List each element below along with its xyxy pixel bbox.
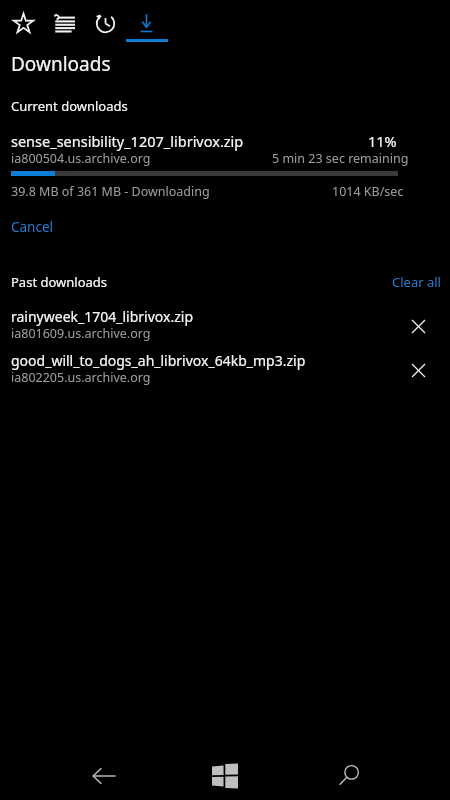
staticText: 1014 KB/sec (332, 183, 404, 200)
button[interactable]: good_will_to_dogs_ah_librivox_64kb_mp3.z… (0, 350, 450, 390)
staticText: ia802205.us.archive.org (11, 369, 151, 386)
staticText: ia800504.us.archive.org (11, 150, 151, 167)
button[interactable]: Remove download (400, 352, 436, 388)
button[interactable]: Downloads (125, 2, 167, 44)
staticText: Cancel (11, 218, 54, 236)
button[interactable]: Back (82, 754, 126, 798)
staticText: 39.8 MB of 361 MB - Downloading (11, 183, 210, 200)
staticText: Current downloads (11, 97, 128, 115)
staticText: sense_sensibility_1207_librivox.zip (11, 131, 244, 151)
button[interactable]: Start (203, 754, 247, 798)
button[interactable]: sense_sensibility_1207_librivox.zip (0, 128, 450, 206)
staticText: 11% (368, 131, 397, 151)
staticText: Past downloads (11, 273, 108, 291)
staticText: rainyweek_1704_librivox.zip (11, 307, 193, 326)
button[interactable]: Reading list (43, 2, 85, 44)
button[interactable]: Cancel (5, 214, 60, 240)
button[interactable]: History (84, 2, 126, 44)
staticText: Downloads (11, 51, 111, 77)
button[interactable]: Remove download (400, 308, 436, 344)
button[interactable]: rainyweek_1704_librivox.zip (0, 306, 450, 346)
button[interactable]: Favorites (2, 2, 44, 44)
button[interactable]: Clear all (387, 269, 446, 295)
staticText: ia801609.us.archive.org (11, 325, 151, 342)
staticText: Clear all (392, 273, 441, 291)
staticText: 5 min 23 sec remaining (272, 150, 409, 167)
button[interactable]: Search (327, 754, 371, 798)
staticText: good_will_to_dogs_ah_librivox_64kb_mp3.z… (11, 351, 306, 370)
